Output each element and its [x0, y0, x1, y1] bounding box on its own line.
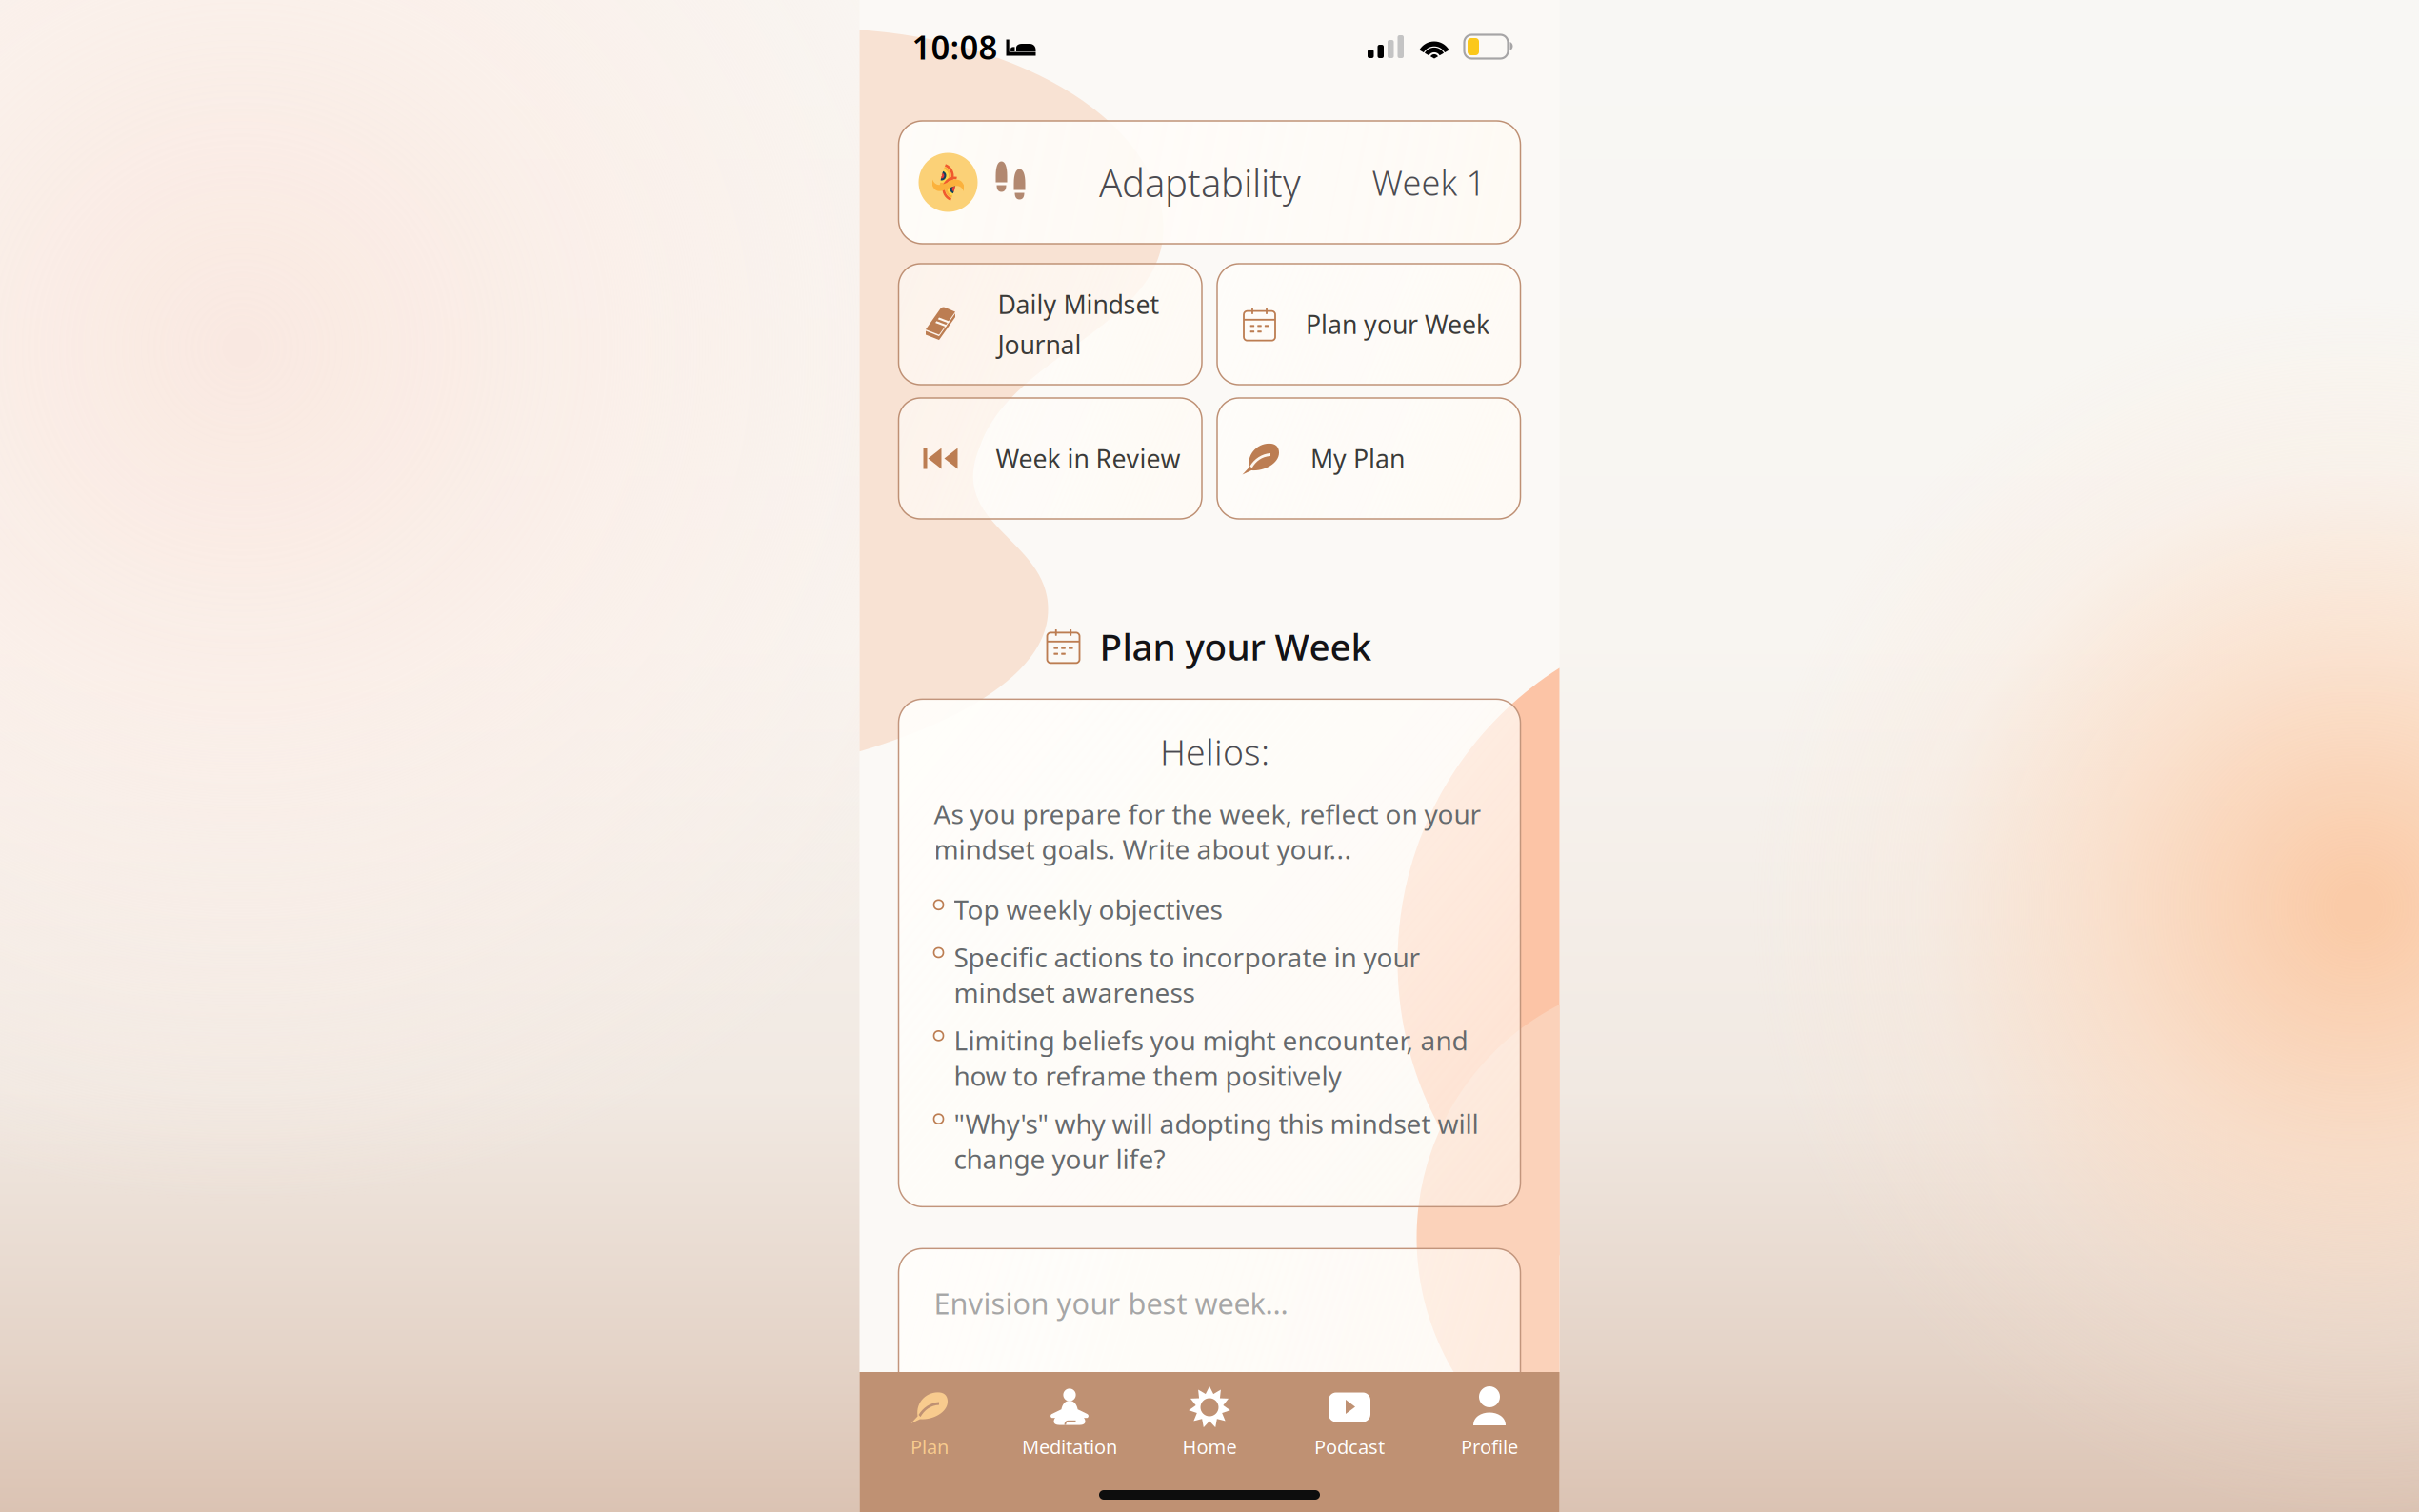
staticText: Meditation	[1022, 1434, 1117, 1459]
staticText: My Plan	[1310, 442, 1405, 475]
button[interactable]: Week in Review	[899, 398, 1202, 519]
staticText: Plan	[910, 1434, 949, 1459]
staticText: Specific actions to incorporate in your …	[954, 939, 1420, 1010]
staticText: 10:08	[912, 25, 998, 69]
staticText: Adaptability	[1099, 157, 1301, 208]
staticText: Daily Mindset Journal	[998, 287, 1160, 361]
staticText: Envision your best week...	[934, 1284, 1288, 1323]
staticText: Home	[1182, 1434, 1237, 1459]
button[interactable]: Home	[1140, 1385, 1279, 1459]
button[interactable]: Plan	[860, 1385, 1000, 1459]
staticText: Plan your Week	[1306, 307, 1489, 341]
staticText: "Why's" why will adopting this mindset w…	[954, 1106, 1479, 1176]
staticText: Podcast	[1314, 1434, 1385, 1459]
staticText: Plan your Week	[1100, 622, 1372, 671]
staticText: Profile	[1461, 1434, 1518, 1459]
staticText: Limiting beliefs you might encounter, an…	[954, 1022, 1468, 1093]
button[interactable]: Daily Mindset Journal	[899, 264, 1202, 385]
button[interactable]: My Plan	[1217, 398, 1520, 519]
button[interactable]: Adaptability	[899, 121, 1520, 244]
staticText: As you prepare for the week, reflect on …	[934, 796, 1481, 867]
staticText: Week in Review	[996, 442, 1180, 475]
button[interactable]: Meditation	[1000, 1385, 1140, 1459]
button[interactable]: Plan your Week	[1217, 264, 1520, 385]
staticText: Week 1	[1372, 160, 1486, 205]
button[interactable]: Profile	[1419, 1385, 1559, 1459]
button[interactable]: Podcast	[1279, 1385, 1419, 1459]
staticText: Top weekly objectives	[954, 891, 1222, 927]
staticText: Helios:	[1160, 728, 1269, 775]
